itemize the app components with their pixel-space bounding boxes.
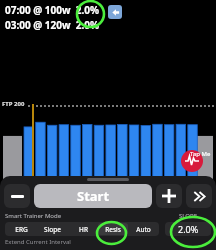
staticText: Extend Current Interval [5, 238, 71, 246]
staticText: Start [77, 187, 110, 205]
staticText: Tap Me [190, 150, 211, 158]
staticText: HR [79, 225, 88, 234]
staticText: Slope [44, 225, 61, 234]
staticText: ERG [15, 225, 28, 234]
button[interactable]: Increase [156, 184, 182, 208]
button[interactable]: Back [108, 5, 122, 19]
staticText: Smart Trainer Mode [5, 212, 62, 220]
button[interactable]: Slope [37, 223, 68, 235]
button[interactable]: ERG [6, 223, 37, 235]
staticText: 03:00 @ 120w 2.0% [5, 18, 100, 32]
staticText: 2.0% [178, 223, 199, 235]
staticText: Resis [105, 225, 121, 234]
button[interactable]: Start [34, 184, 152, 208]
button[interactable]: Resis [98, 223, 128, 235]
button[interactable]: 2.0% [165, 222, 211, 236]
button[interactable]: Minus [4, 184, 30, 208]
staticText: FTP 200 [2, 100, 25, 108]
staticText: 07:00 @ 100w 2.0% [5, 3, 100, 17]
staticText: Auto [136, 225, 151, 234]
button[interactable]: Auto [128, 223, 158, 235]
staticText: SLOPE [179, 212, 197, 220]
button[interactable]: Skip [186, 184, 212, 208]
button[interactable]: HR [68, 223, 98, 235]
